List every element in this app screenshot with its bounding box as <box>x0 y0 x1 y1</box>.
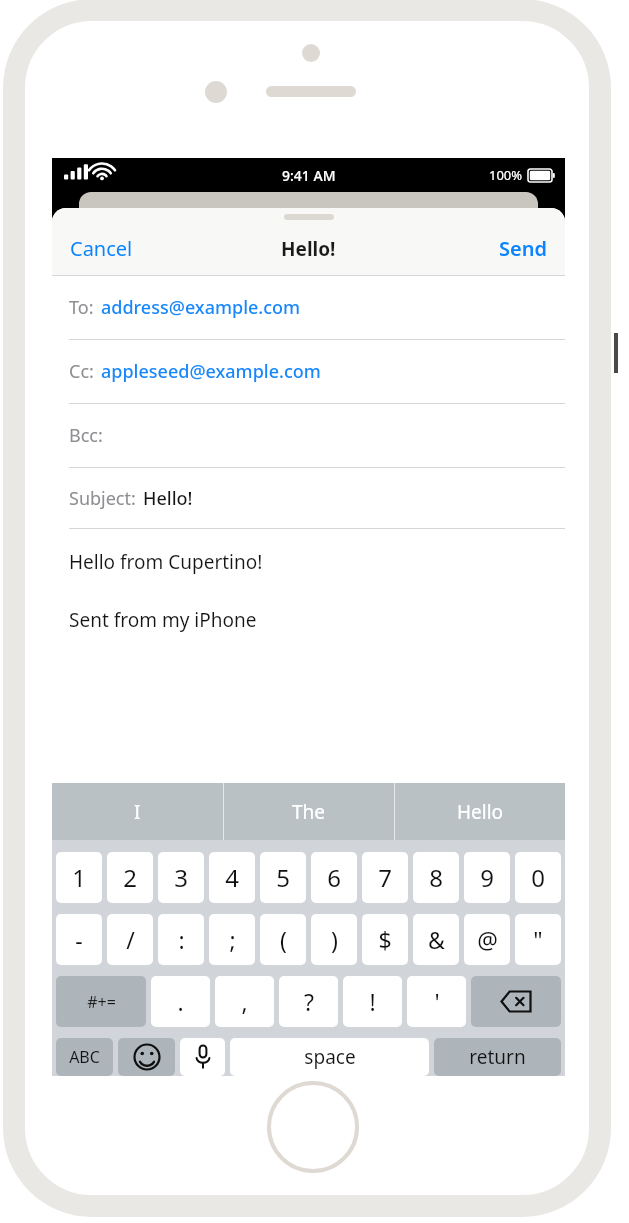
button[interactable]: : <box>158 914 204 965</box>
button[interactable]: space <box>230 1038 429 1076</box>
button[interactable]: 8 <box>413 852 459 903</box>
staticText: Bcc: <box>69 423 103 448</box>
staticText: $ <box>378 924 392 955</box>
staticText: ! <box>369 986 376 1017</box>
staticText: 4 <box>225 861 239 894</box>
button[interactable]: ; <box>209 914 255 965</box>
staticText: - <box>75 924 83 955</box>
staticText: return <box>469 1044 526 1070</box>
staticText: ) <box>331 924 338 955</box>
button[interactable]: return <box>434 1038 561 1076</box>
staticText: Send <box>499 235 547 262</box>
button[interactable]: To: <box>52 276 565 340</box>
button[interactable]: 1 <box>56 852 102 903</box>
staticText: : <box>178 924 185 955</box>
staticText: 9:41 AM <box>282 166 336 185</box>
button[interactable]: & <box>413 914 459 965</box>
button[interactable]: Send <box>481 227 565 270</box>
button[interactable]: . <box>151 976 210 1027</box>
button[interactable]: / <box>107 914 153 965</box>
staticText: Hello from Cupertino! <box>69 549 263 575</box>
staticText: 8 <box>429 861 443 894</box>
staticText: @ <box>477 924 498 955</box>
staticText: 0 <box>531 861 545 894</box>
staticText: address@example.com <box>101 295 301 320</box>
staticText: space <box>304 1044 356 1070</box>
button[interactable]: ! <box>343 976 402 1027</box>
button[interactable]: Hello <box>395 783 565 840</box>
staticText: ? <box>304 986 314 1017</box>
staticText: , <box>241 986 248 1017</box>
staticText: . <box>177 986 184 1017</box>
staticText: Hello! <box>143 486 193 511</box>
button[interactable]: Subject: <box>52 468 565 529</box>
button[interactable]: ' <box>407 976 466 1027</box>
staticText: ABC <box>69 1046 100 1068</box>
staticText: 2 <box>123 861 137 894</box>
button[interactable]: Emoji <box>118 1038 175 1076</box>
button[interactable]: 4 <box>209 852 255 903</box>
staticText: 3 <box>174 861 188 894</box>
staticText: Hello <box>457 799 504 825</box>
staticText: / <box>126 924 135 955</box>
button[interactable]: 3 <box>158 852 204 903</box>
staticText: ( <box>280 924 287 955</box>
staticText: " <box>533 924 543 955</box>
button[interactable]: I <box>52 783 223 840</box>
staticText: 100% <box>489 166 523 184</box>
staticText: #+= <box>87 991 116 1013</box>
staticText: 5 <box>276 861 290 894</box>
staticText: Cancel <box>70 235 133 262</box>
button[interactable]: ) <box>311 914 357 965</box>
staticText: 7 <box>378 861 392 894</box>
button[interactable]: , <box>215 976 274 1027</box>
button[interactable]: ( <box>260 914 306 965</box>
button[interactable]: #+= <box>56 976 146 1027</box>
staticText: 1 <box>72 861 86 894</box>
button[interactable]: Bcc: <box>52 404 565 468</box>
button[interactable]: Cancel <box>52 227 151 270</box>
button[interactable]: Backspace <box>471 976 561 1027</box>
button[interactable]: Cc: <box>52 340 565 404</box>
button[interactable]: The <box>224 783 394 840</box>
button[interactable]: " <box>515 914 561 965</box>
button[interactable]: 0 <box>515 852 561 903</box>
staticText: & <box>428 924 445 955</box>
button[interactable]: Dictate <box>180 1038 225 1076</box>
button[interactable]: 6 <box>311 852 357 903</box>
button[interactable]: $ <box>362 914 408 965</box>
staticText: 9 <box>480 861 494 894</box>
staticText: appleseed@example.com <box>101 359 321 384</box>
button[interactable]: 9 <box>464 852 510 903</box>
staticText: Sent from my iPhone <box>69 607 257 633</box>
staticText: 6 <box>327 861 341 894</box>
button[interactable]: ? <box>279 976 338 1027</box>
staticText: Cc: <box>69 359 94 384</box>
staticText: ' <box>434 986 440 1017</box>
staticText: Hello! <box>281 236 336 262</box>
button[interactable]: @ <box>464 914 510 965</box>
button[interactable]: - <box>56 914 102 965</box>
button[interactable]: 2 <box>107 852 153 903</box>
button[interactable]: 7 <box>362 852 408 903</box>
button[interactable]: 5 <box>260 852 306 903</box>
button[interactable]: ABC <box>56 1038 113 1076</box>
button[interactable]: Hello from Cupertino! <box>69 549 565 633</box>
staticText: Subject: <box>69 486 136 511</box>
staticText: I <box>134 799 141 825</box>
staticText: The <box>292 799 326 825</box>
staticText: ; <box>229 924 236 955</box>
staticText: To: <box>69 295 94 320</box>
